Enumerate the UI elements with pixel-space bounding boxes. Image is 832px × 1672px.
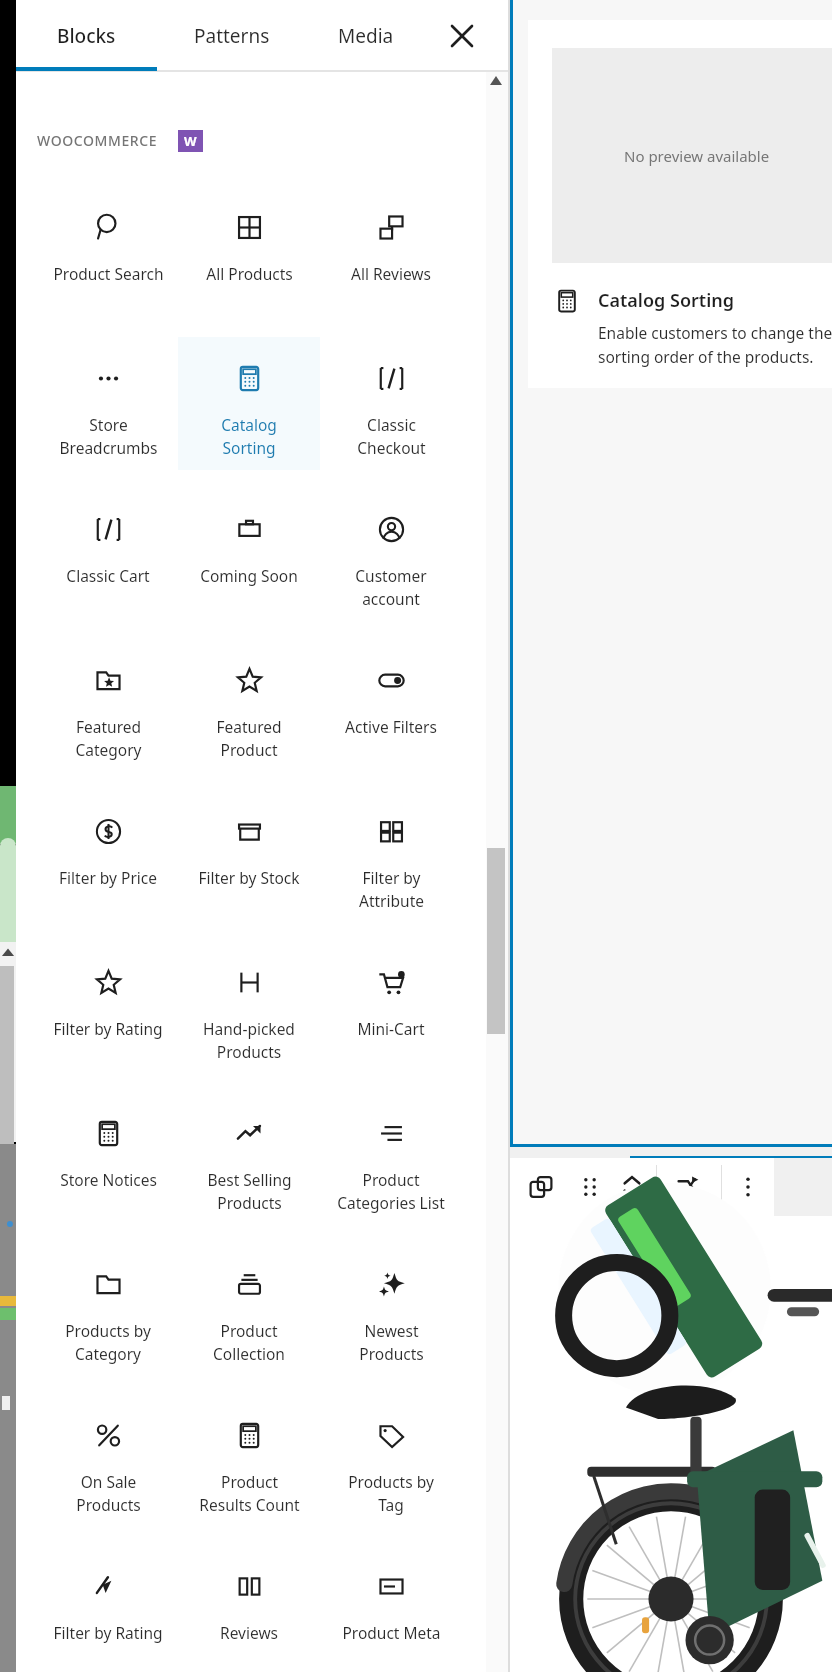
staticText: WOOCOMMERCE	[37, 131, 158, 150]
staticText: Store Notices	[60, 1169, 157, 1190]
button[interactable]: Mini-Cart	[320, 941, 462, 1074]
staticText: Hand-picked Products	[203, 1018, 295, 1063]
button[interactable]: Products by Tag	[320, 1394, 462, 1527]
button[interactable]: Align	[657, 1158, 721, 1216]
staticText: Products by Tag	[348, 1471, 434, 1516]
button[interactable]: On Sale Products	[37, 1394, 179, 1527]
staticText: Filter by Rating	[53, 1622, 163, 1643]
button[interactable]: Classic Cart	[37, 488, 179, 621]
staticText: Featured Category	[75, 716, 142, 761]
button[interactable]: Filter by Price	[37, 790, 179, 923]
staticText: Enable customers to change the sorting o…	[598, 322, 832, 367]
button[interactable]: All Reviews	[320, 186, 462, 319]
staticText: Customer account	[355, 565, 427, 610]
button[interactable]: Drag	[572, 1158, 608, 1216]
staticText: Blocks	[57, 23, 116, 49]
staticText: Best Selling Products	[207, 1169, 292, 1214]
button[interactable]: Classic Checkout	[320, 337, 462, 470]
button[interactable]: Coming Soon	[178, 488, 320, 621]
staticText: Product Categories List	[337, 1169, 445, 1214]
staticText: Filter by Stock	[198, 867, 300, 888]
button[interactable]: Block type	[510, 1158, 572, 1216]
staticText: Classic Cart	[66, 565, 150, 586]
staticText: Filter by Rating	[53, 1018, 163, 1039]
button[interactable]: Hand-picked Products	[178, 941, 320, 1074]
staticText: Product Search	[53, 263, 164, 284]
button[interactable]: Blocks	[16, 0, 157, 72]
staticText: Product Meta	[342, 1622, 441, 1643]
staticText: Filter by Price	[59, 867, 157, 888]
staticText: No preview available	[624, 146, 770, 166]
button[interactable]: Product Results Count	[178, 1394, 320, 1527]
staticText: Catalog Sorting	[221, 414, 277, 459]
button[interactable]: Filter by Stock	[178, 790, 320, 923]
button[interactable]: Featured Product	[178, 639, 320, 772]
button[interactable]: Newest Products	[320, 1243, 462, 1376]
staticText: W	[184, 132, 197, 150]
staticText: Patterns	[194, 23, 270, 49]
staticText: Classic Checkout	[357, 414, 426, 459]
staticText: Product Results Count	[199, 1471, 300, 1516]
button[interactable]: Store Notices	[37, 1092, 179, 1225]
staticText: Mini-Cart	[357, 1018, 425, 1039]
button[interactable]: Media	[306, 0, 426, 72]
staticText: Newest Products	[359, 1320, 424, 1365]
staticText: Catalog Sorting	[598, 288, 734, 313]
button[interactable]: Filter by Attribute	[320, 790, 462, 923]
staticText: Products by Category	[65, 1320, 151, 1365]
button[interactable]: Move	[608, 1158, 656, 1216]
staticText: Product Collection	[213, 1320, 285, 1365]
button[interactable]: Catalog Sorting	[178, 337, 320, 470]
staticText: Featured Product	[216, 716, 282, 761]
staticText: Filter by Attribute	[359, 867, 424, 912]
button[interactable]: More options	[722, 1158, 774, 1216]
button[interactable]: Best Selling Products	[178, 1092, 320, 1225]
button[interactable]: Active Filters	[320, 639, 462, 772]
button[interactable]: Products by Category	[37, 1243, 179, 1376]
button[interactable]: All Products	[178, 186, 320, 319]
button[interactable]: Store Breadcrumbs	[37, 337, 179, 470]
button[interactable]: Product Search	[37, 186, 179, 319]
staticText: On Sale Products	[76, 1471, 141, 1516]
button[interactable]: Featured Category	[37, 639, 179, 772]
button[interactable]: Product Meta	[320, 1545, 462, 1672]
button[interactable]: Reviews	[178, 1545, 320, 1672]
button[interactable]: Close	[426, 0, 498, 72]
staticText: Coming Soon	[200, 565, 298, 586]
staticText: Active Filters	[345, 716, 437, 737]
staticText: Reviews	[220, 1622, 278, 1643]
button[interactable]: Product Categories List	[320, 1092, 462, 1225]
button[interactable]: Filter by Rating	[37, 941, 179, 1074]
button[interactable]: Product Collection	[178, 1243, 320, 1376]
staticText: All Products	[206, 263, 293, 284]
staticText: Media	[338, 23, 394, 49]
staticText: All Reviews	[351, 263, 431, 284]
staticText: Store Breadcrumbs	[59, 414, 158, 459]
button[interactable]: Filter by Rating	[37, 1545, 179, 1672]
button[interactable]: Customer account	[320, 488, 462, 621]
button[interactable]: Patterns	[157, 0, 306, 72]
